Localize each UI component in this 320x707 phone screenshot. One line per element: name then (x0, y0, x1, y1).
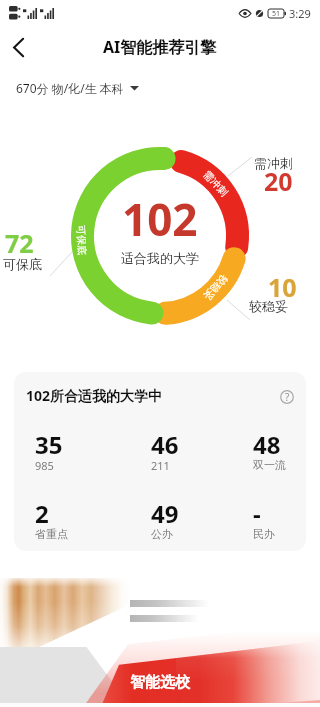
staticText: 985 (35, 458, 54, 473)
button[interactable]: Back (1, 30, 35, 64)
staticText: 72 (5, 226, 34, 260)
staticText: 211 (151, 458, 170, 473)
staticText: 670分 物/化/生 本科 (16, 80, 124, 96)
staticText: 49 (151, 497, 179, 530)
staticText: 智能选校 (130, 673, 190, 692)
button[interactable] (0, 612, 320, 707)
staticText: 46 (151, 428, 179, 461)
staticText: 适合我的大学 (121, 250, 199, 266)
staticText: 公办 (151, 527, 173, 541)
button[interactable]: Help (275, 385, 299, 409)
staticText: 需冲刺 (201, 168, 231, 199)
staticText: ? (285, 390, 290, 404)
staticText: AI智能推荐引擎 (103, 36, 217, 58)
staticText: 双一流 (253, 458, 286, 472)
staticText: - (253, 497, 261, 530)
staticText: 可保底 (3, 256, 42, 272)
staticText: 3:29 (289, 6, 311, 21)
staticText: 可保底 (74, 225, 89, 255)
staticText: 较稳妥 (201, 272, 231, 303)
staticText: 省重点 (35, 527, 68, 541)
staticText: 35 (35, 428, 63, 461)
staticText: 较稳妥 (249, 298, 288, 314)
staticText: 48 (253, 428, 281, 461)
button[interactable]: 670分 物/化/生 本科 (16, 74, 139, 102)
staticText: 51 (272, 9, 281, 18)
staticText: 20 (264, 164, 293, 198)
staticText: 102所合适我的大学中 (26, 386, 163, 405)
staticText: 需冲刺 (254, 155, 293, 171)
staticText: 2 (35, 497, 49, 530)
staticText: 102 (122, 189, 198, 249)
staticText: 民办 (253, 527, 275, 541)
staticText: 10 (268, 270, 297, 304)
